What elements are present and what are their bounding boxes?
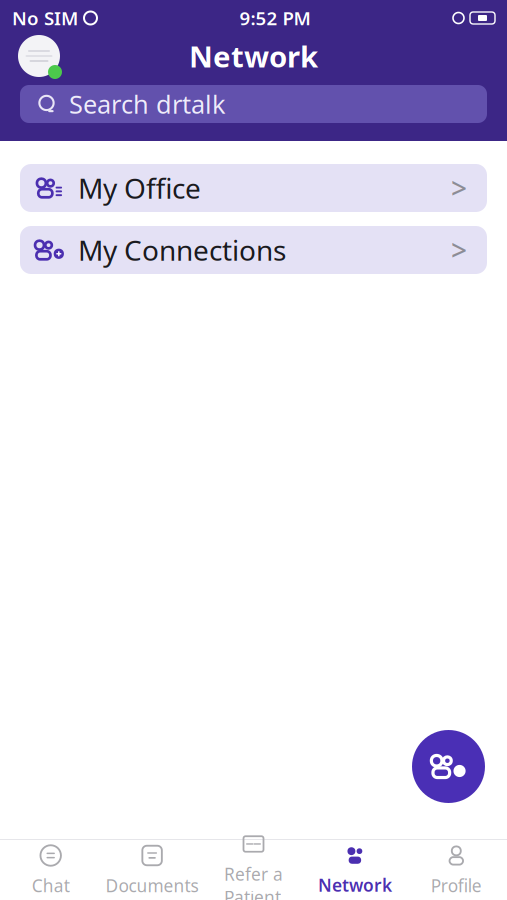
staticText: Chat	[32, 874, 70, 897]
button[interactable]: My Connections	[20, 226, 487, 274]
staticText: Network	[318, 873, 392, 896]
button[interactable]: Refer a Patient	[203, 840, 304, 900]
staticText: Profile	[431, 874, 482, 897]
staticText: Refer a Patient	[224, 862, 283, 900]
button[interactable]: My Office	[20, 164, 487, 212]
button[interactable]: Documents	[101, 840, 203, 900]
staticText: 9:52 PM	[239, 6, 310, 30]
staticText: >	[451, 231, 467, 269]
staticText: Search drtalk	[69, 87, 226, 121]
staticText: No SIM	[12, 6, 78, 30]
staticText: >	[451, 169, 467, 207]
staticText: Documents	[106, 874, 199, 897]
staticText: Network	[189, 36, 318, 75]
button[interactable]: Add connection	[412, 730, 485, 803]
button[interactable]: Profile	[406, 840, 507, 900]
button[interactable]: Chat	[0, 840, 101, 900]
button[interactable]: Profile photo, online	[16, 33, 62, 79]
staticText: My Office	[78, 169, 201, 207]
staticText: My Connections	[78, 231, 286, 269]
button[interactable]: Network	[304, 840, 406, 900]
button[interactable]: Search drtalk	[20, 85, 487, 123]
